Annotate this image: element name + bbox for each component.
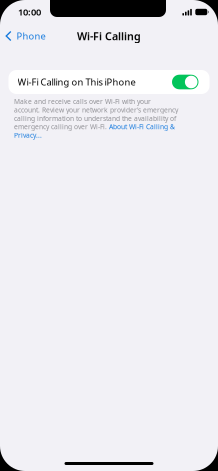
staticText: emergency calling over Wi-Fi.	[14, 122, 109, 131]
button[interactable]: emergency calling over Wi-Fi.	[14, 122, 175, 131]
button[interactable]: Wi-Fi Calling on This iPhone	[8, 70, 209, 94]
button[interactable]: Phone	[0, 24, 51, 48]
staticText: Wi-Fi Calling on This iPhone	[17, 76, 135, 88]
staticText: account. Review your network provider's …	[14, 105, 178, 114]
button[interactable]: Privacy...	[14, 131, 42, 140]
staticText: About Wi-Fi Calling &	[109, 122, 175, 131]
staticText: Wi-Fi Calling	[77, 29, 141, 43]
staticText: 10:00	[18, 6, 41, 18]
staticText: Phone	[16, 30, 45, 42]
staticText: Make and receive calls over Wi-Fi with y…	[14, 97, 151, 106]
staticText: calling information to understand the av…	[14, 114, 176, 123]
staticText: Privacy...	[14, 131, 42, 140]
